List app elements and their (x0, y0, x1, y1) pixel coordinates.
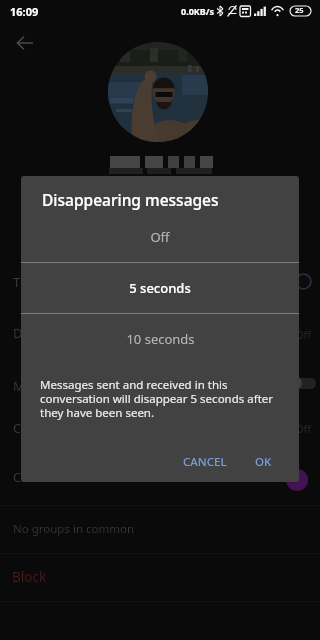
button[interactable]: 5 seconds (21, 263, 299, 313)
staticText: Off (295, 421, 312, 436)
staticText: OK (255, 454, 272, 470)
button[interactable]: Custom notifications (0, 405, 320, 451)
staticText: Mute notifications (13, 377, 124, 395)
staticText: Default message timer (13, 324, 152, 342)
button[interactable]: Block (12, 568, 47, 586)
staticText: Theme (13, 273, 56, 291)
staticText: 16:09 (10, 4, 39, 19)
button[interactable]: Edit (286, 469, 308, 491)
staticText: CANCEL (183, 454, 227, 470)
staticText: 0.0KB/s (181, 5, 215, 17)
button[interactable]: Theme (0, 259, 320, 305)
staticText: Chat colors (13, 468, 82, 486)
staticText: 5 seconds (129, 279, 191, 297)
button[interactable]: Toggle (288, 376, 316, 390)
staticText: 25 (295, 5, 304, 15)
staticText: Disappearing messages (42, 189, 219, 210)
button[interactable]: 10 seconds (21, 314, 299, 364)
button[interactable]: Default message timer (0, 310, 320, 356)
button[interactable]: Mute notifications (0, 363, 320, 409)
button[interactable]: CANCEL (175, 448, 235, 476)
staticText: Off (150, 228, 170, 246)
button[interactable]: Off (21, 212, 299, 262)
staticText: Off (295, 327, 312, 342)
staticText: Messages sent and received in this conve… (40, 377, 277, 420)
staticText: Custom notifications (13, 419, 140, 437)
staticText: 10 seconds (126, 330, 195, 348)
button[interactable]: Chat colors (0, 454, 320, 500)
button[interactable]: OK (247, 448, 280, 476)
button[interactable]: Back (13, 31, 37, 55)
button[interactable]: No groups in common (13, 521, 135, 537)
